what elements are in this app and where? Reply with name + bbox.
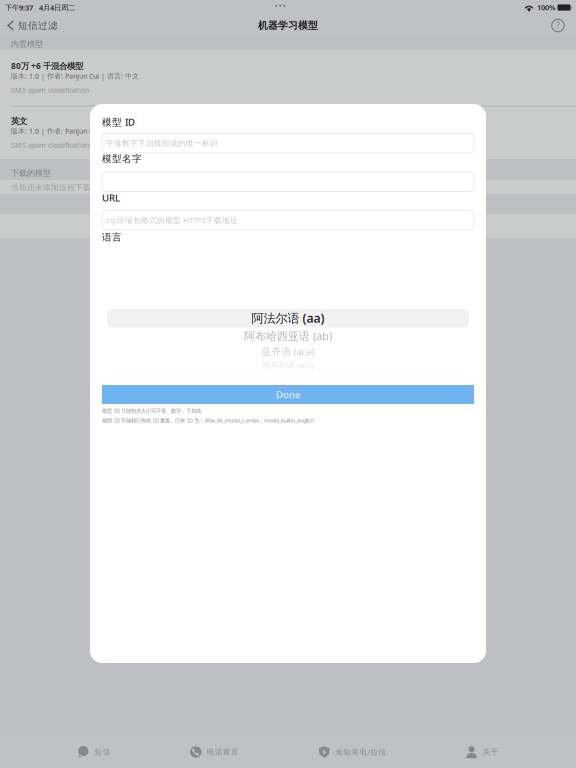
staticText: 机器学习模型 xyxy=(258,19,318,32)
staticText: • • • xyxy=(275,1,285,9)
staticText: 模型 ID xyxy=(102,115,135,129)
staticText: 语言 xyxy=(102,231,122,243)
button[interactable]: Done xyxy=(102,385,474,404)
staticText: 内置模型 xyxy=(11,39,43,49)
staticText: 字母数字下划线组成的唯一标识 xyxy=(106,138,218,148)
staticText: 关于 xyxy=(483,747,499,757)
button[interactable]: 英文 xyxy=(0,113,576,160)
staticText: 阿侨利语 (ach) xyxy=(262,360,313,370)
staticText: 英文 xyxy=(11,116,27,126)
staticText: 80万 +6 千混合模型 xyxy=(11,60,83,71)
staticText: 短信 xyxy=(94,747,110,757)
button[interactable]: 短信 xyxy=(75,736,112,768)
staticText: 模型 ID 只能包含大小写字母、数字、下划线 xyxy=(102,407,201,414)
staticText: ? xyxy=(556,19,560,31)
staticText: 100% xyxy=(537,2,555,13)
button[interactable]: 80万 +6 千混合模型 xyxy=(0,58,576,105)
staticText: URL xyxy=(102,191,120,204)
button[interactable]: 关于 xyxy=(464,736,501,768)
staticText: 电话黄页 xyxy=(207,747,239,757)
staticText: 短信过滤 xyxy=(18,19,58,32)
staticText: 版本: 1.0 | 作者: Panjun Cui | 语言: 英文 xyxy=(11,126,139,136)
staticText: SMS spam classification xyxy=(11,85,89,95)
staticText: 模型名字 xyxy=(102,153,142,165)
staticText: SMS spam classification xyxy=(11,140,89,150)
staticText: 下载的模型 xyxy=(11,168,51,178)
staticText: zip压缩包格式的模型 HTTPS下载地址 xyxy=(106,215,238,225)
button[interactable]: 电话黄页 xyxy=(188,736,241,768)
staticText: 阿布哈西亚语 (ab) xyxy=(244,328,332,343)
staticText: 亚齐语 (ace) xyxy=(261,345,314,358)
staticText: 下午9:37 4月4日周二 xyxy=(5,2,75,13)
staticText: Done xyxy=(276,388,300,401)
staticText: 版本: 1.0 | 作者: Panjun Cui | 语言: 中文 xyxy=(11,71,139,81)
button[interactable]: 未知来电/短信 xyxy=(316,736,388,768)
staticText: 模型 ID 不能和已有的 ID 重复。已有 ID 为： 80w_6k_model… xyxy=(102,417,314,424)
button[interactable]: Help xyxy=(546,15,570,36)
staticText: 阿法尔语 (aa) xyxy=(251,310,324,326)
staticText: 当前还未添加远程下载的模型 xyxy=(11,183,115,192)
staticText: 未知来电/短信 xyxy=(335,747,386,757)
button[interactable]: 短信过滤 xyxy=(0,15,64,36)
